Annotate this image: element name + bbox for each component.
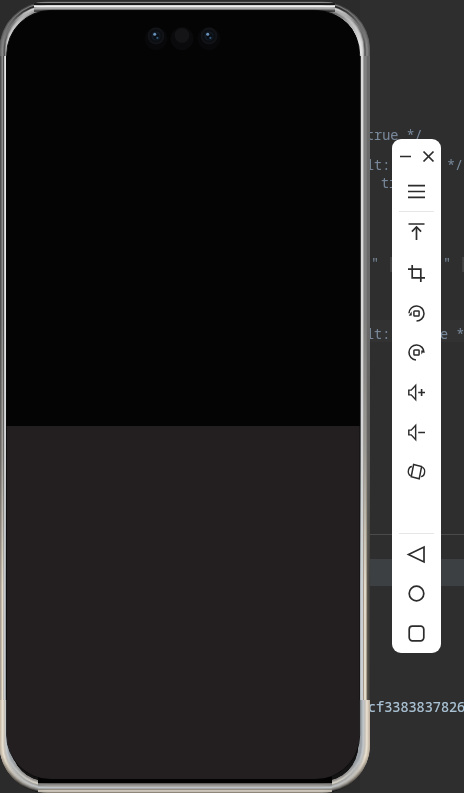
button[interactable]: Extended controls: [398, 173, 434, 209]
staticText: |: [459, 254, 464, 272]
button[interactable]: Back: [398, 536, 434, 572]
button[interactable]: Close: [417, 145, 439, 167]
staticText: ": [371, 254, 380, 272]
staticText: */: [447, 156, 464, 174]
button[interactable]: Home: [398, 575, 434, 611]
staticText: |: [387, 254, 396, 272]
staticText: e */: [440, 325, 464, 343]
button[interactable]: Power: [398, 213, 434, 249]
button[interactable]: Volume down: [398, 414, 434, 450]
button[interactable]: Screenshot: [398, 255, 434, 291]
button[interactable]: Overview: [398, 615, 434, 651]
staticText: tr: [381, 174, 398, 192]
button[interactable]: Rotate right: [398, 334, 434, 370]
button[interactable]: Minimize: [394, 145, 416, 167]
staticText: lt:: [366, 156, 391, 174]
staticText: ": [443, 254, 452, 272]
staticText: cf3383837826: [368, 698, 464, 716]
button[interactable]: Volume up: [398, 374, 434, 410]
button[interactable]: Rotate device: [398, 453, 434, 489]
button[interactable]: Rotate left: [398, 295, 434, 331]
staticText: true */: [366, 126, 423, 144]
staticText: lt:: [366, 325, 391, 343]
